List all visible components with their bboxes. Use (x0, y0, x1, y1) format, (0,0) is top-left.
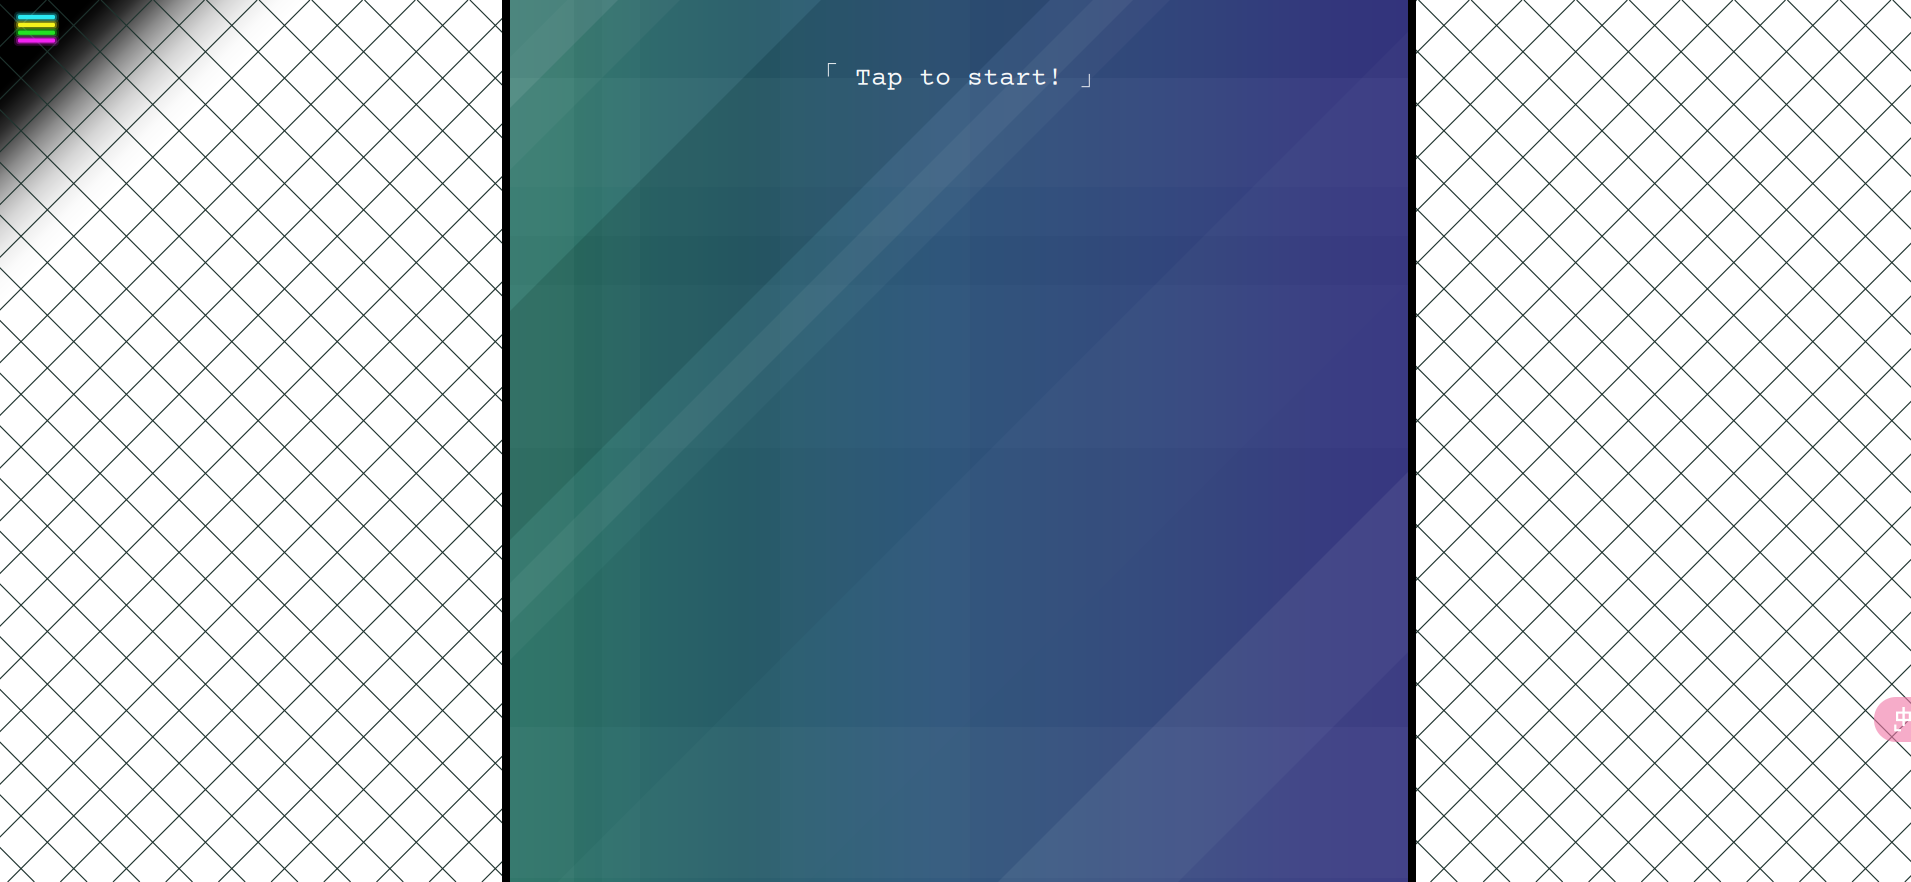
button[interactable]: Menu (0, 0, 71, 59)
button[interactable]: Translate (1874, 697, 1911, 742)
staticText: 「 Tap to start! 」 (812, 59, 1106, 94)
